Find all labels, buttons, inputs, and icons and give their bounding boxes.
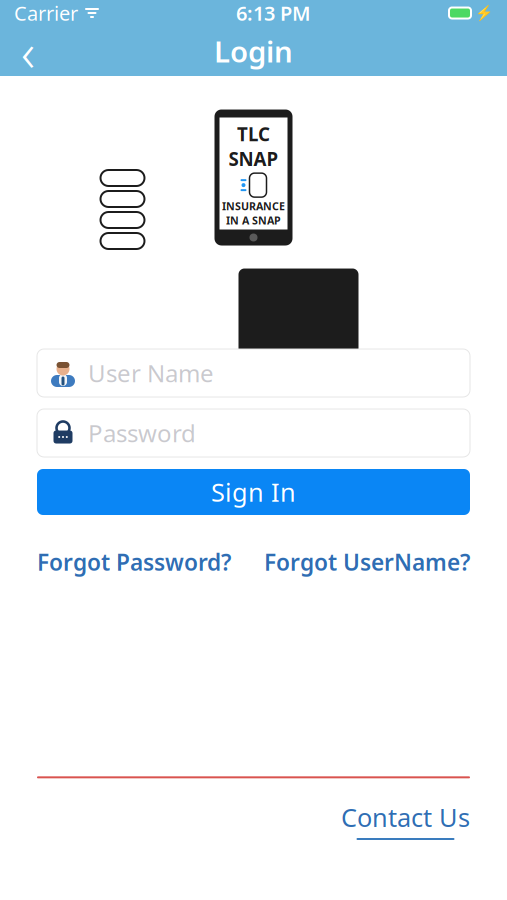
staticText: Login (214, 31, 293, 70)
staticText: User Name (88, 357, 214, 389)
staticText: Forgot Password? (37, 547, 231, 577)
staticText: Sign In (211, 475, 296, 509)
staticText: SNAP (228, 146, 278, 171)
staticText: INSURANCE (222, 199, 285, 213)
button[interactable]: Sign In (37, 469, 470, 515)
staticText: Forgot UserName? (264, 547, 470, 577)
button[interactable]: Contact Us (341, 800, 470, 840)
staticText: ‹ (21, 16, 35, 86)
button[interactable]: Forgot UserName? (264, 547, 470, 577)
staticText: ⚡ (475, 5, 493, 21)
staticText: Password (88, 417, 196, 449)
button[interactable]: Back (0, 26, 56, 76)
staticText: IN A SNAP (226, 213, 281, 227)
staticText: TLC (237, 121, 270, 146)
staticText: 6:13 PM (236, 0, 311, 26)
button[interactable]: Forgot Password? (37, 547, 231, 577)
staticText: Carrier (14, 0, 78, 26)
staticText: Contact Us (341, 800, 470, 834)
